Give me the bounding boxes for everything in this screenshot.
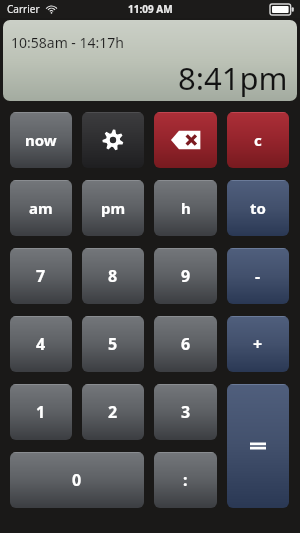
- button[interactable]: pm: [82, 180, 144, 236]
- staticText: h: [181, 198, 191, 218]
- button[interactable]: Settings: [82, 112, 144, 168]
- staticText: 1: [36, 401, 46, 423]
- staticText: 8: [108, 265, 118, 287]
- button[interactable]: Equals: [227, 384, 289, 508]
- staticText: 5: [108, 333, 118, 355]
- button[interactable]: 6: [154, 316, 217, 372]
- staticText: 6: [181, 333, 191, 355]
- button[interactable]: 1: [10, 384, 72, 440]
- button[interactable]: :: [154, 452, 217, 508]
- staticText: 7: [36, 265, 46, 287]
- button[interactable]: now: [10, 112, 72, 168]
- button[interactable]: 9: [154, 248, 217, 304]
- button[interactable]: h: [154, 180, 217, 236]
- button[interactable]: 10:58am - 14:17h: [3, 20, 297, 101]
- staticText: c: [254, 130, 262, 150]
- staticText: to: [250, 198, 266, 218]
- button[interactable]: c: [227, 112, 289, 168]
- staticText: 11:09 AM: [128, 2, 173, 16]
- button[interactable]: 7: [10, 248, 72, 304]
- staticText: :: [183, 469, 188, 491]
- button[interactable]: 8: [82, 248, 144, 304]
- button[interactable]: -: [227, 248, 289, 304]
- button[interactable]: 2: [82, 384, 144, 440]
- button[interactable]: 3: [154, 384, 217, 440]
- staticText: 0: [72, 469, 82, 491]
- staticText: 8:41pm: [178, 57, 288, 99]
- staticText: pm: [101, 198, 126, 218]
- button[interactable]: +: [227, 316, 289, 372]
- staticText: 10:58am - 14:17h: [11, 33, 124, 52]
- button[interactable]: 5: [82, 316, 144, 372]
- button[interactable]: to: [227, 180, 289, 236]
- staticText: -: [255, 265, 261, 287]
- staticText: Carrier: [7, 2, 40, 16]
- staticText: am: [29, 198, 53, 218]
- button[interactable]: 0: [10, 452, 144, 508]
- button[interactable]: am: [10, 180, 72, 236]
- staticText: now: [25, 130, 57, 150]
- staticText: 9: [181, 265, 191, 287]
- staticText: 2: [108, 401, 118, 423]
- button[interactable]: Backspace: [154, 112, 217, 168]
- staticText: +: [253, 333, 263, 355]
- button[interactable]: 4: [10, 316, 72, 372]
- staticText: 4: [36, 333, 46, 355]
- staticText: 3: [181, 401, 191, 423]
